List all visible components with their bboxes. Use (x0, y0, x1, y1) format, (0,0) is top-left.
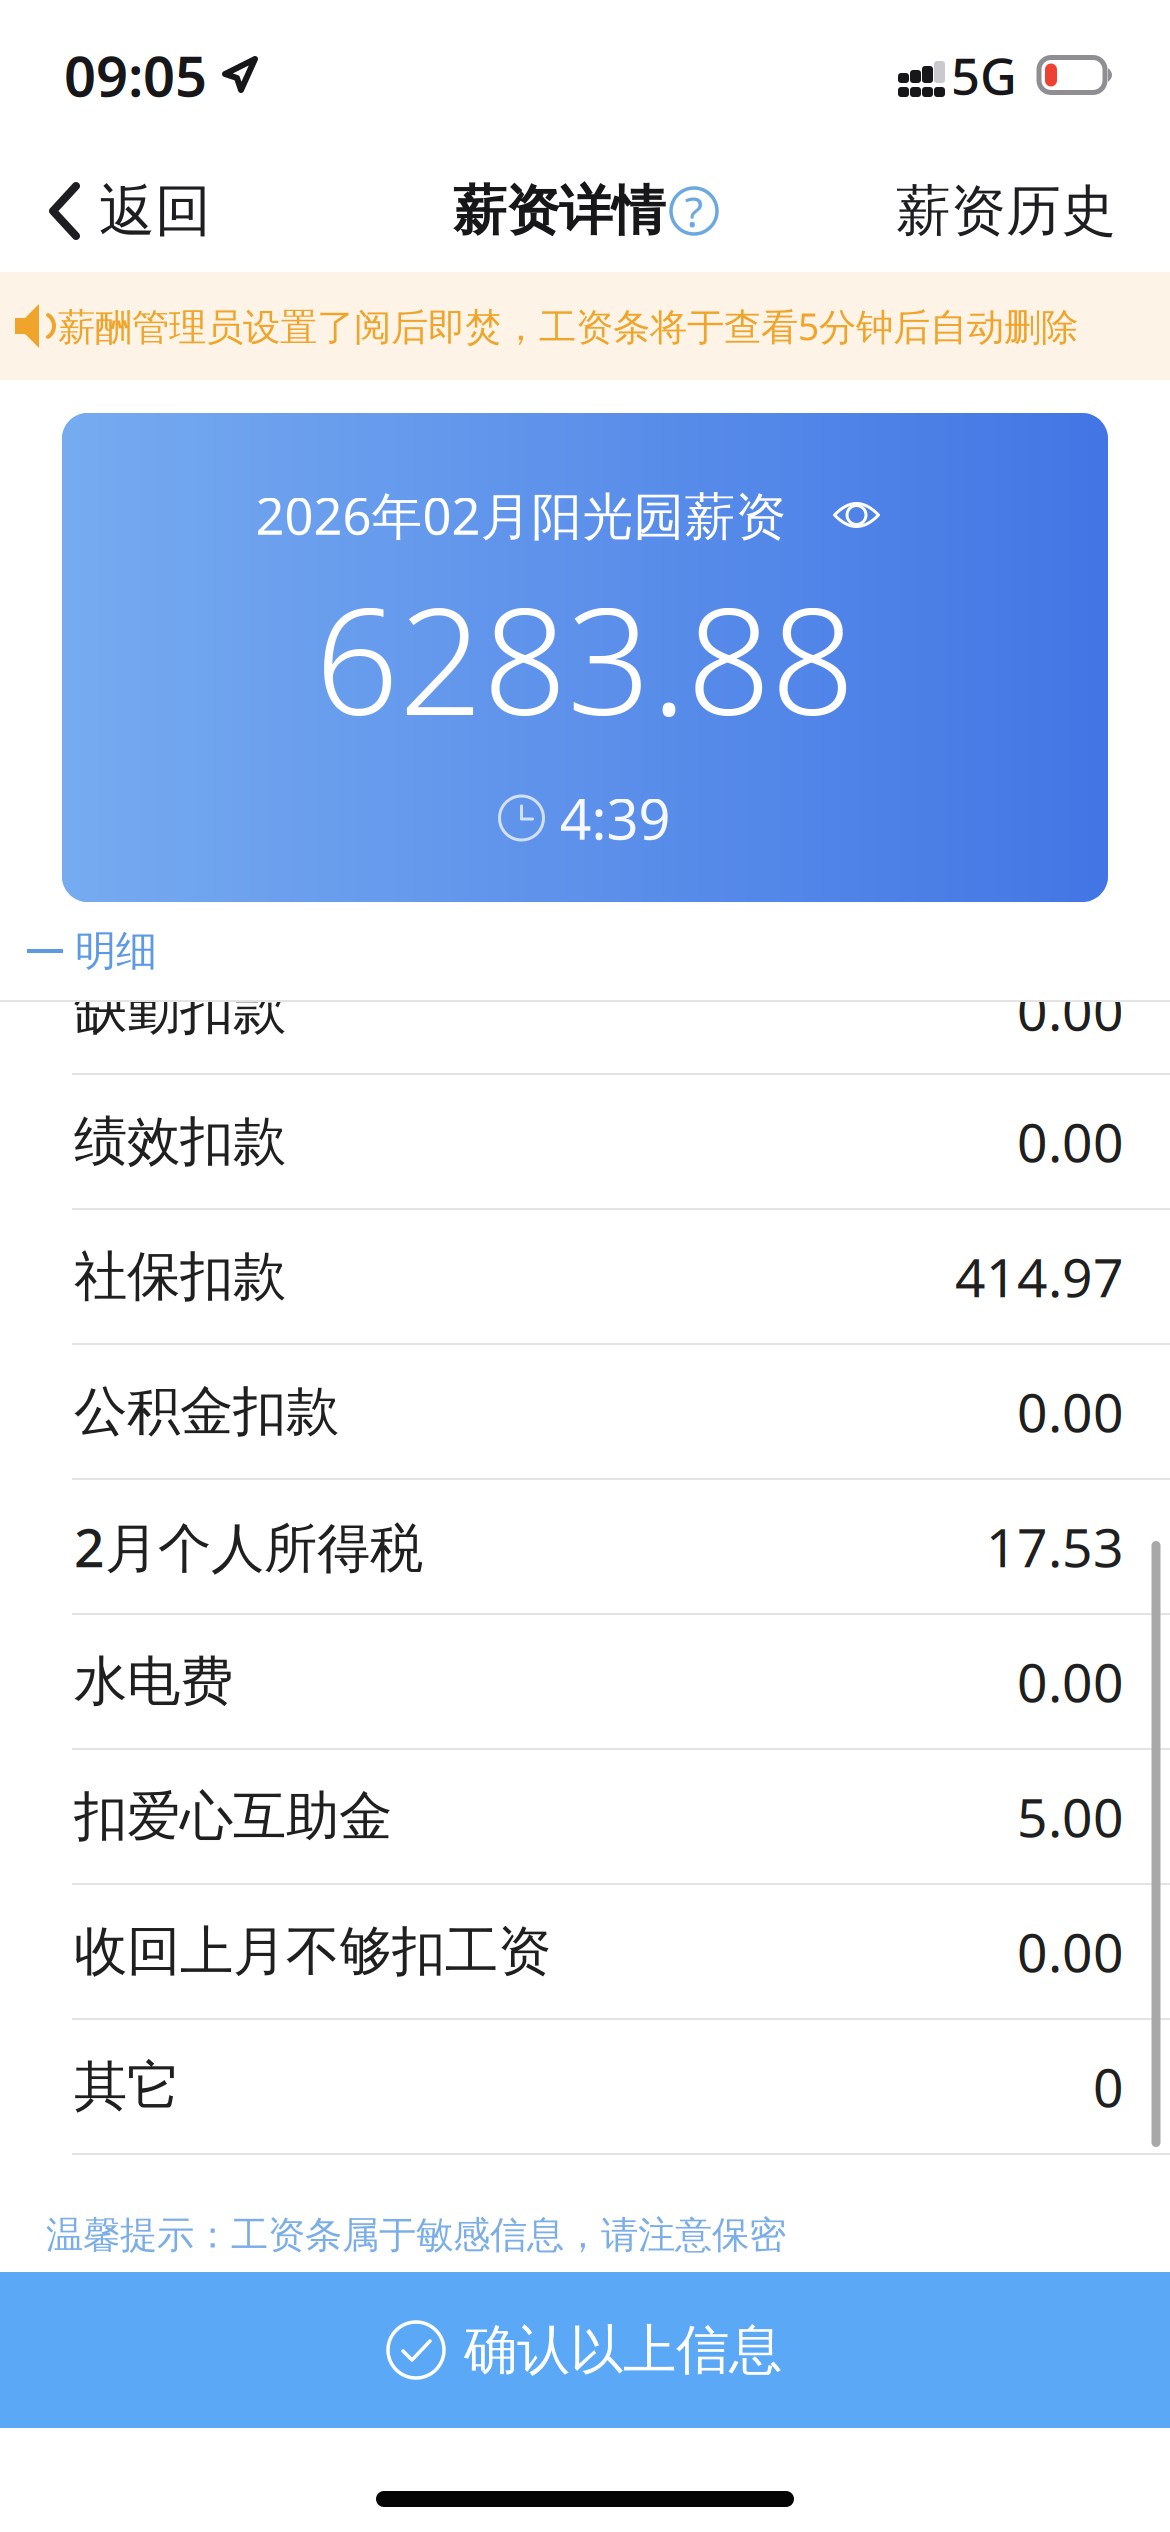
staticText: 0.00 (1017, 1916, 1124, 1987)
staticText: 确认以上信息 (464, 2317, 782, 2383)
staticText: 薪资历史 (896, 177, 1116, 244)
staticText: 返回 (99, 177, 211, 245)
staticText: 17.53 (986, 1511, 1124, 1582)
staticText: 6283.88 (315, 561, 855, 755)
staticText: 温馨提示：工资条属于敏感信息，请注意保密 (46, 2212, 786, 2258)
staticText: 社保扣款 (74, 1244, 286, 1309)
button[interactable]: 返回 (0, 161, 211, 261)
staticText: 0 (1093, 2051, 1124, 2122)
staticText: 2月个人所得税 (74, 1511, 423, 1582)
button[interactable]: 确认以上信息 (0, 2272, 1170, 2428)
staticText: 绩效扣款 (74, 1109, 286, 1174)
staticText: 明细 (75, 926, 157, 976)
button[interactable]: 薪资历史 (896, 161, 1170, 260)
staticText: 5.00 (1017, 1781, 1124, 1852)
staticText: 薪酬管理员设置了阅后即焚，工资条将于查看5分钟后自动删除 (58, 301, 1078, 351)
staticText: ? (684, 183, 703, 239)
staticText: 0.00 (1017, 1646, 1124, 1717)
staticText: 其它 (74, 2054, 180, 2119)
staticText: 414.97 (955, 1241, 1124, 1312)
staticText: 公积金扣款 (74, 1379, 339, 1444)
staticText: 收回上月不够扣工资 (74, 1919, 551, 1984)
staticText: 0.00 (1017, 975, 1124, 1045)
staticText: 缺勤扣款 (74, 977, 286, 1043)
staticText: 09:05 (64, 38, 207, 112)
staticText: 0.00 (1017, 1106, 1124, 1177)
button[interactable]: 帮助 (671, 188, 717, 234)
staticText: 扣爱心互助金 (74, 1784, 392, 1849)
staticText: 水电费 (74, 1649, 233, 1714)
button[interactable]: 显示金额 (832, 498, 880, 532)
staticText: 4:39 (559, 781, 670, 855)
staticText: 0.00 (1017, 1376, 1124, 1447)
staticText: 薪资详情 (453, 178, 665, 244)
staticText: 2026年02月阳光园薪资 (255, 481, 786, 549)
staticText: 5G (951, 41, 1017, 109)
